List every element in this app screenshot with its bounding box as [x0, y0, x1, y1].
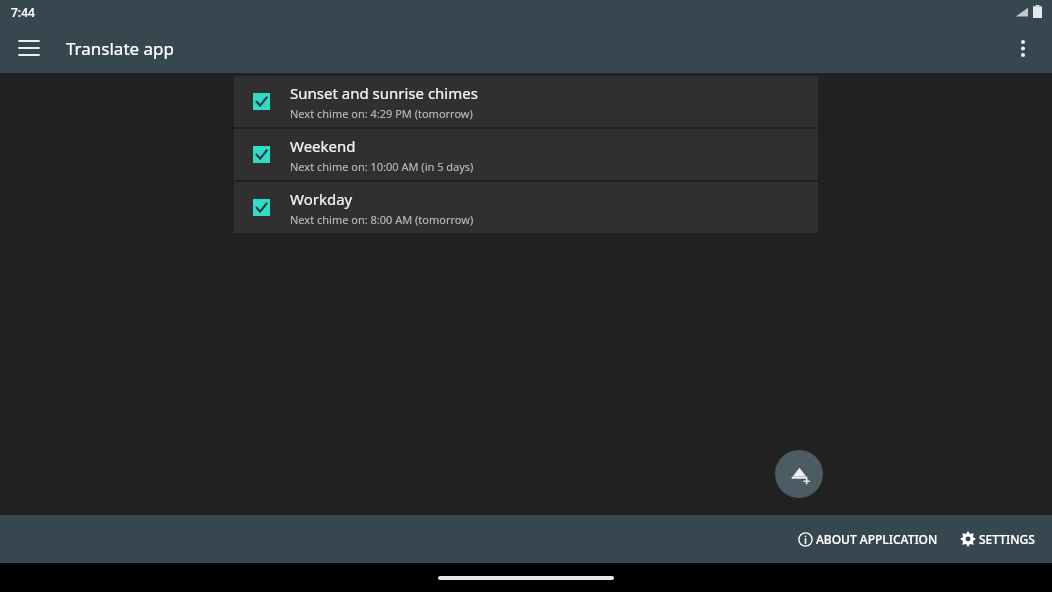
- button[interactable]: Weekend: [234, 129, 818, 180]
- button[interactable]: Sunset and sunrise chimes: [234, 76, 818, 127]
- button[interactable]: Add chime: [775, 450, 823, 498]
- staticText: Weekend: [290, 136, 356, 156]
- staticText: Next chime on: 10:00 AM (in 5 days): [290, 159, 474, 174]
- button[interactable]: Open navigation menu: [6, 25, 52, 71]
- staticText: Translate app: [66, 37, 174, 60]
- staticText: Next chime on: 4:29 PM (tomorrow): [290, 106, 473, 121]
- button[interactable]: SETTINGS: [955, 525, 1040, 553]
- staticText: SETTINGS: [979, 531, 1035, 547]
- button[interactable]: Workday: [234, 182, 818, 233]
- staticText: Sunset and sunrise chimes: [290, 83, 478, 103]
- staticText: ABOUT APPLICATION: [816, 531, 938, 547]
- staticText: 7:44: [11, 4, 35, 20]
- staticText: Next chime on: 8:00 AM (tomorrow): [290, 212, 474, 227]
- button[interactable]: More options: [1000, 25, 1046, 71]
- button[interactable]: ABOUT APPLICATION: [793, 525, 943, 553]
- staticText: Workday: [290, 189, 353, 209]
